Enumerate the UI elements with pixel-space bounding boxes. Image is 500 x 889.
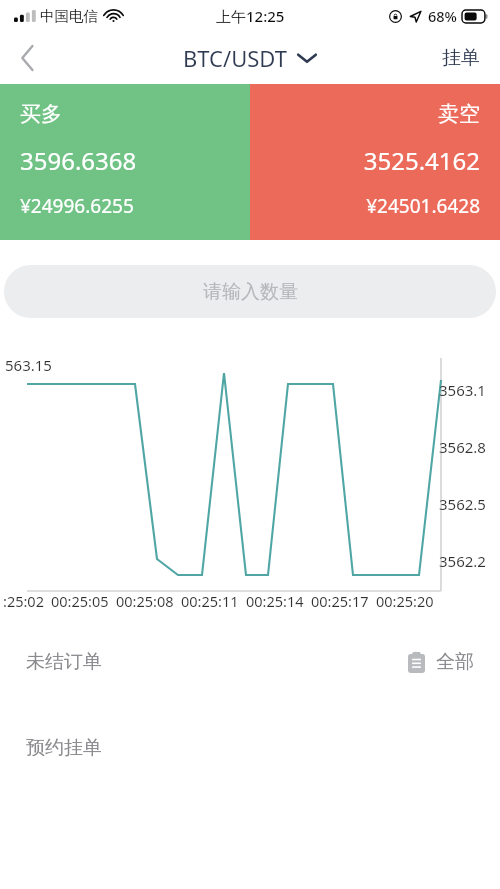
staticText: :25:02	[3, 591, 44, 611]
staticText: 预约挂单	[26, 736, 102, 760]
button[interactable]: 未结订单	[0, 640, 500, 684]
button[interactable]: BTC/USDT	[183, 43, 317, 73]
button[interactable]: 请输入数量	[4, 265, 496, 318]
staticText: 卖空	[438, 101, 480, 127]
staticText: 3562.8	[439, 437, 486, 457]
staticText: ¥24996.6255	[20, 193, 134, 219]
staticText: 00:25:05	[51, 591, 109, 611]
button[interactable]: Back	[0, 32, 54, 84]
staticText: 全部	[436, 650, 474, 674]
button[interactable]: 预约挂单	[0, 726, 500, 770]
staticText: 3596.6368	[20, 144, 137, 177]
staticText: 未结订单	[26, 650, 102, 674]
staticText: ¥24501.6428	[366, 193, 480, 219]
staticText: 挂单	[442, 46, 480, 70]
staticText: 3562.2	[439, 551, 486, 571]
staticText: 68%	[428, 6, 457, 26]
button[interactable]: 买多	[0, 84, 250, 240]
staticText: 3563.1	[439, 380, 486, 400]
staticText: 买多	[20, 101, 62, 127]
staticText: 00:25:20	[376, 591, 434, 611]
staticText: 请输入数量	[203, 280, 298, 304]
staticText: 3525.4162	[363, 144, 480, 177]
staticText: 3562.5	[439, 494, 486, 514]
staticText: 00:25:14	[246, 591, 304, 611]
staticText: 中国电信	[40, 7, 98, 25]
button[interactable]: 挂单	[422, 36, 500, 80]
staticText: 00:25:08	[116, 591, 174, 611]
staticText: 00:25:11	[181, 591, 239, 611]
staticText: 上午12:25	[216, 6, 285, 26]
staticText: 563.15	[5, 355, 52, 375]
staticText: 00:25:17	[311, 591, 369, 611]
staticText: BTC/USDT	[183, 43, 287, 73]
button[interactable]: 卖空	[250, 84, 500, 240]
